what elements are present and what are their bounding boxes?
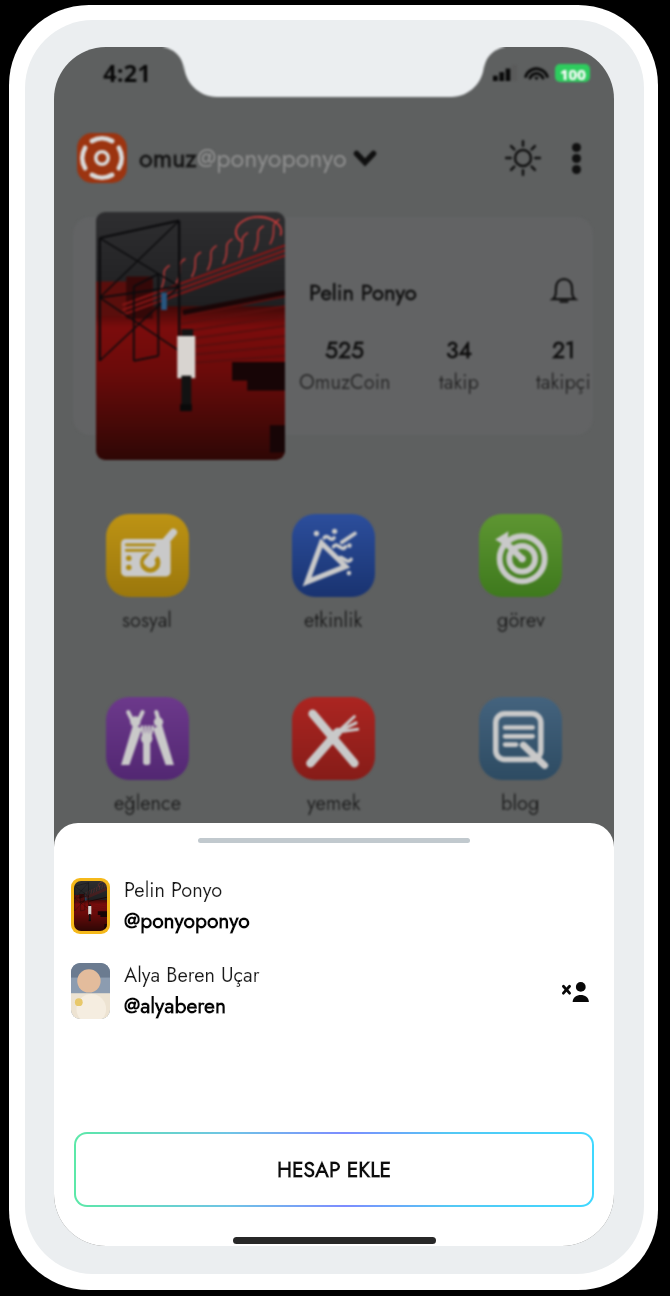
staticText: takipçi [536,368,591,397]
staticText: eğlence [114,789,181,818]
staticText: Pelin Ponyo [309,276,417,308]
staticText: yemek [307,789,361,818]
staticText: sosyal [122,606,172,635]
staticText: 100 [560,64,586,82]
staticText: etkinlik [304,606,363,635]
button[interactable]: etkinlik [240,514,427,635]
staticText: görev [497,606,545,635]
staticText: 21 [552,333,576,366]
button[interactable]: Alya Beren Uçar [54,961,614,1021]
button[interactable]: sosyal [54,514,240,635]
staticText: HESAP EKLE [277,1155,392,1185]
staticText: 525 [325,333,365,366]
staticText: 34 [446,333,472,366]
button[interactable]: Pelin Ponyo [73,217,593,435]
button[interactable]: HESAP EKLE [76,1134,592,1205]
button[interactable]: Pelin Ponyo [54,876,614,936]
staticText: 4:21 [103,56,151,89]
staticText: Alya Beren Uçar [124,961,260,990]
staticText: @ponyoponyo [197,140,347,176]
staticText: @ponyoponyo [124,906,250,936]
staticText: omuz [139,140,197,176]
staticText: OmuzCoin [299,368,391,397]
staticText: @alyaberen [124,991,226,1021]
button[interactable]: yemek [240,697,427,818]
button[interactable]: eğlence [54,697,240,818]
button[interactable]: görev [427,514,614,635]
staticText: takip [439,368,479,397]
staticText: blog [501,789,540,818]
staticText: Pelin Ponyo [124,876,223,905]
button[interactable]: Notifications [545,273,583,311]
button[interactable]: blog [427,697,614,818]
button[interactable]: omuz [74,130,376,186]
button[interactable]: More options [558,140,594,176]
button[interactable]: Brightness [500,135,546,181]
button[interactable]: Remove account [555,970,597,1012]
